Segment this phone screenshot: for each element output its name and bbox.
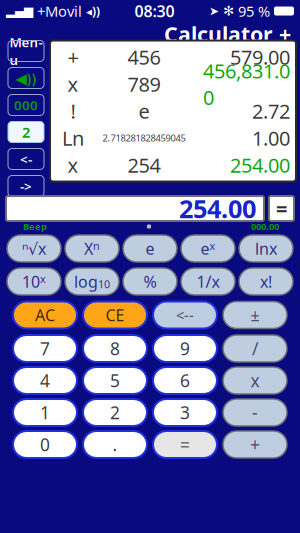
staticText: / xyxy=(252,337,258,360)
button[interactable]: ± xyxy=(223,301,287,328)
button[interactable]: x xyxy=(223,367,287,394)
staticText: . xyxy=(112,433,117,456)
staticText: 3 xyxy=(180,401,190,424)
staticText: 456,831.00 xyxy=(203,57,290,110)
staticText: + xyxy=(250,433,260,456)
staticText: 10 xyxy=(98,277,110,291)
button[interactable]: e xyxy=(123,235,177,262)
staticText: x xyxy=(67,71,78,97)
button[interactable]: 8 xyxy=(83,335,147,362)
button[interactable]: 2 xyxy=(83,399,147,426)
staticText: n xyxy=(93,239,100,253)
staticText: 1/x xyxy=(196,271,219,292)
staticText: 2 xyxy=(22,122,30,142)
staticText: <-- xyxy=(176,305,194,325)
button[interactable]: Menu xyxy=(8,40,44,61)
staticText: 789 xyxy=(127,71,160,97)
staticText: % xyxy=(143,271,156,292)
button[interactable]: AC xyxy=(13,301,77,328)
button[interactable]: ⁿ√x xyxy=(7,235,61,262)
staticText: e xyxy=(145,238,154,259)
button[interactable]: CE xyxy=(83,301,147,328)
staticText: 254 xyxy=(127,152,160,178)
staticText: 2.72 xyxy=(252,98,290,124)
staticText: = xyxy=(276,195,287,222)
staticText: 08:30 xyxy=(134,0,174,22)
staticText: 95 % xyxy=(238,1,270,21)
staticText: 8 xyxy=(110,337,120,360)
staticText: ◂)) xyxy=(86,3,100,19)
button[interactable]: = xyxy=(153,431,217,458)
button[interactable]: 5 xyxy=(83,367,147,394)
staticText: 456 xyxy=(127,44,160,70)
button[interactable]: 3 xyxy=(153,399,217,426)
staticText: X xyxy=(84,238,93,259)
staticText: - xyxy=(252,401,258,424)
staticText: ✻ xyxy=(223,3,234,18)
button[interactable]: 1/x xyxy=(181,268,235,295)
button[interactable]: lnx xyxy=(239,235,293,262)
staticText: ⁿ√x xyxy=(22,238,46,259)
button[interactable]: 4 xyxy=(13,367,77,394)
staticText: +Movil xyxy=(37,1,82,21)
button[interactable]: 2 xyxy=(8,121,44,142)
button[interactable]: % xyxy=(123,268,177,295)
staticText: x xyxy=(40,272,46,286)
staticText: ➤ xyxy=(209,4,219,18)
button[interactable]: <- xyxy=(8,148,44,169)
button[interactable]: x! xyxy=(239,268,293,295)
staticText: 2 xyxy=(110,401,120,424)
staticText: 2.718281828459045 xyxy=(102,132,185,144)
staticText: AC xyxy=(35,304,55,326)
button[interactable]: - xyxy=(223,399,287,426)
staticText: 4 xyxy=(40,369,50,392)
button[interactable]: . xyxy=(83,431,147,458)
staticText: -> xyxy=(20,177,32,195)
button[interactable]: 000 xyxy=(8,94,44,115)
staticText: log xyxy=(74,271,98,292)
staticText: 0 xyxy=(40,433,50,456)
staticText: x! xyxy=(260,271,272,292)
staticText: Calculator + xyxy=(164,20,291,48)
staticText: 1 xyxy=(40,401,50,424)
button[interactable]: 7 xyxy=(13,335,77,362)
staticText: lnx xyxy=(255,238,277,259)
staticText: Menu xyxy=(9,33,42,69)
button[interactable]: 1 xyxy=(13,399,77,426)
staticText: e xyxy=(200,238,209,259)
staticText: + xyxy=(67,44,78,70)
staticText: 10 xyxy=(22,271,40,292)
staticText: e xyxy=(138,98,149,124)
staticText: 9 xyxy=(180,337,190,360)
staticText: 254.00 xyxy=(179,192,256,225)
button[interactable]: 0 xyxy=(13,431,77,458)
button[interactable]: 9 xyxy=(153,335,217,362)
button[interactable]: 10 xyxy=(7,268,61,295)
staticText: ▂▄▆ xyxy=(6,4,33,18)
staticText: x xyxy=(250,369,259,392)
staticText: CE xyxy=(105,304,124,326)
button[interactable]: Equals xyxy=(269,196,294,221)
button[interactable]: 6 xyxy=(153,367,217,394)
staticText: 5 xyxy=(110,369,120,392)
button[interactable]: / xyxy=(223,335,287,362)
button[interactable]: -> xyxy=(8,175,44,196)
button[interactable]: log xyxy=(65,268,119,295)
button[interactable]: + xyxy=(223,431,287,458)
staticText: 000.00 xyxy=(251,220,279,233)
button[interactable]: ◀)) xyxy=(8,67,44,88)
staticText: 579.00 xyxy=(230,44,290,70)
staticText: = xyxy=(180,433,190,456)
button[interactable]: e xyxy=(181,235,235,262)
staticText: 1.00 xyxy=(252,125,290,151)
staticText: ◀)) xyxy=(15,68,36,88)
staticText: <- xyxy=(20,150,32,168)
button[interactable]: <-- xyxy=(153,301,217,328)
button[interactable]: X xyxy=(65,235,119,262)
staticText: ! xyxy=(70,98,75,124)
staticText: ± xyxy=(250,304,259,326)
staticText: 000 xyxy=(14,96,38,114)
staticText: x xyxy=(67,152,78,178)
staticText: Beep xyxy=(23,220,47,233)
staticText: x xyxy=(209,239,215,253)
